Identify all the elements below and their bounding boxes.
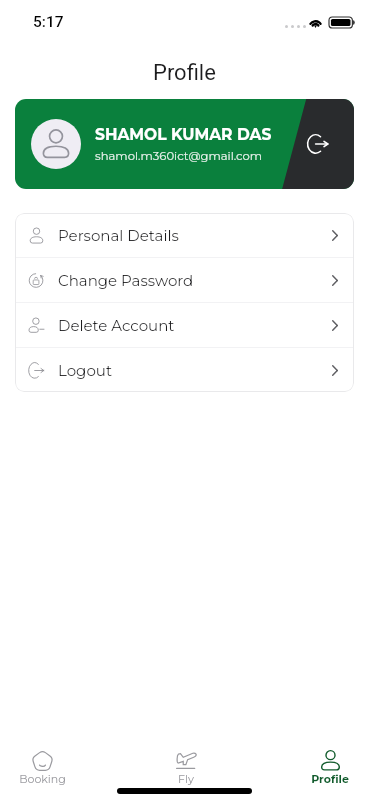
staticText: Profile	[311, 772, 349, 785]
button[interactable]: Logout	[15, 348, 354, 392]
staticText: Change Password	[58, 271, 194, 289]
staticText: SHAMOL KUMAR DAS	[95, 125, 272, 144]
button[interactable]: Delete Account	[15, 303, 354, 347]
staticText: Personal Details	[58, 226, 179, 244]
staticText: Logout	[58, 361, 112, 379]
staticText: Delete Account	[58, 316, 175, 334]
staticText: shamol.m360ict@gmail.com	[95, 149, 263, 163]
button[interactable]: Profile	[305, 750, 355, 785]
staticText: Profile	[153, 60, 216, 86]
button[interactable]: Booking	[17, 750, 67, 785]
staticText: Fly	[178, 772, 194, 785]
button[interactable]: Fly	[161, 750, 211, 785]
staticText: 5:17	[33, 13, 64, 31]
staticText: Booking	[19, 772, 66, 785]
button[interactable]: Log out	[300, 126, 336, 162]
button[interactable]: Change Password	[15, 258, 354, 302]
button[interactable]: Personal Details	[15, 213, 354, 257]
